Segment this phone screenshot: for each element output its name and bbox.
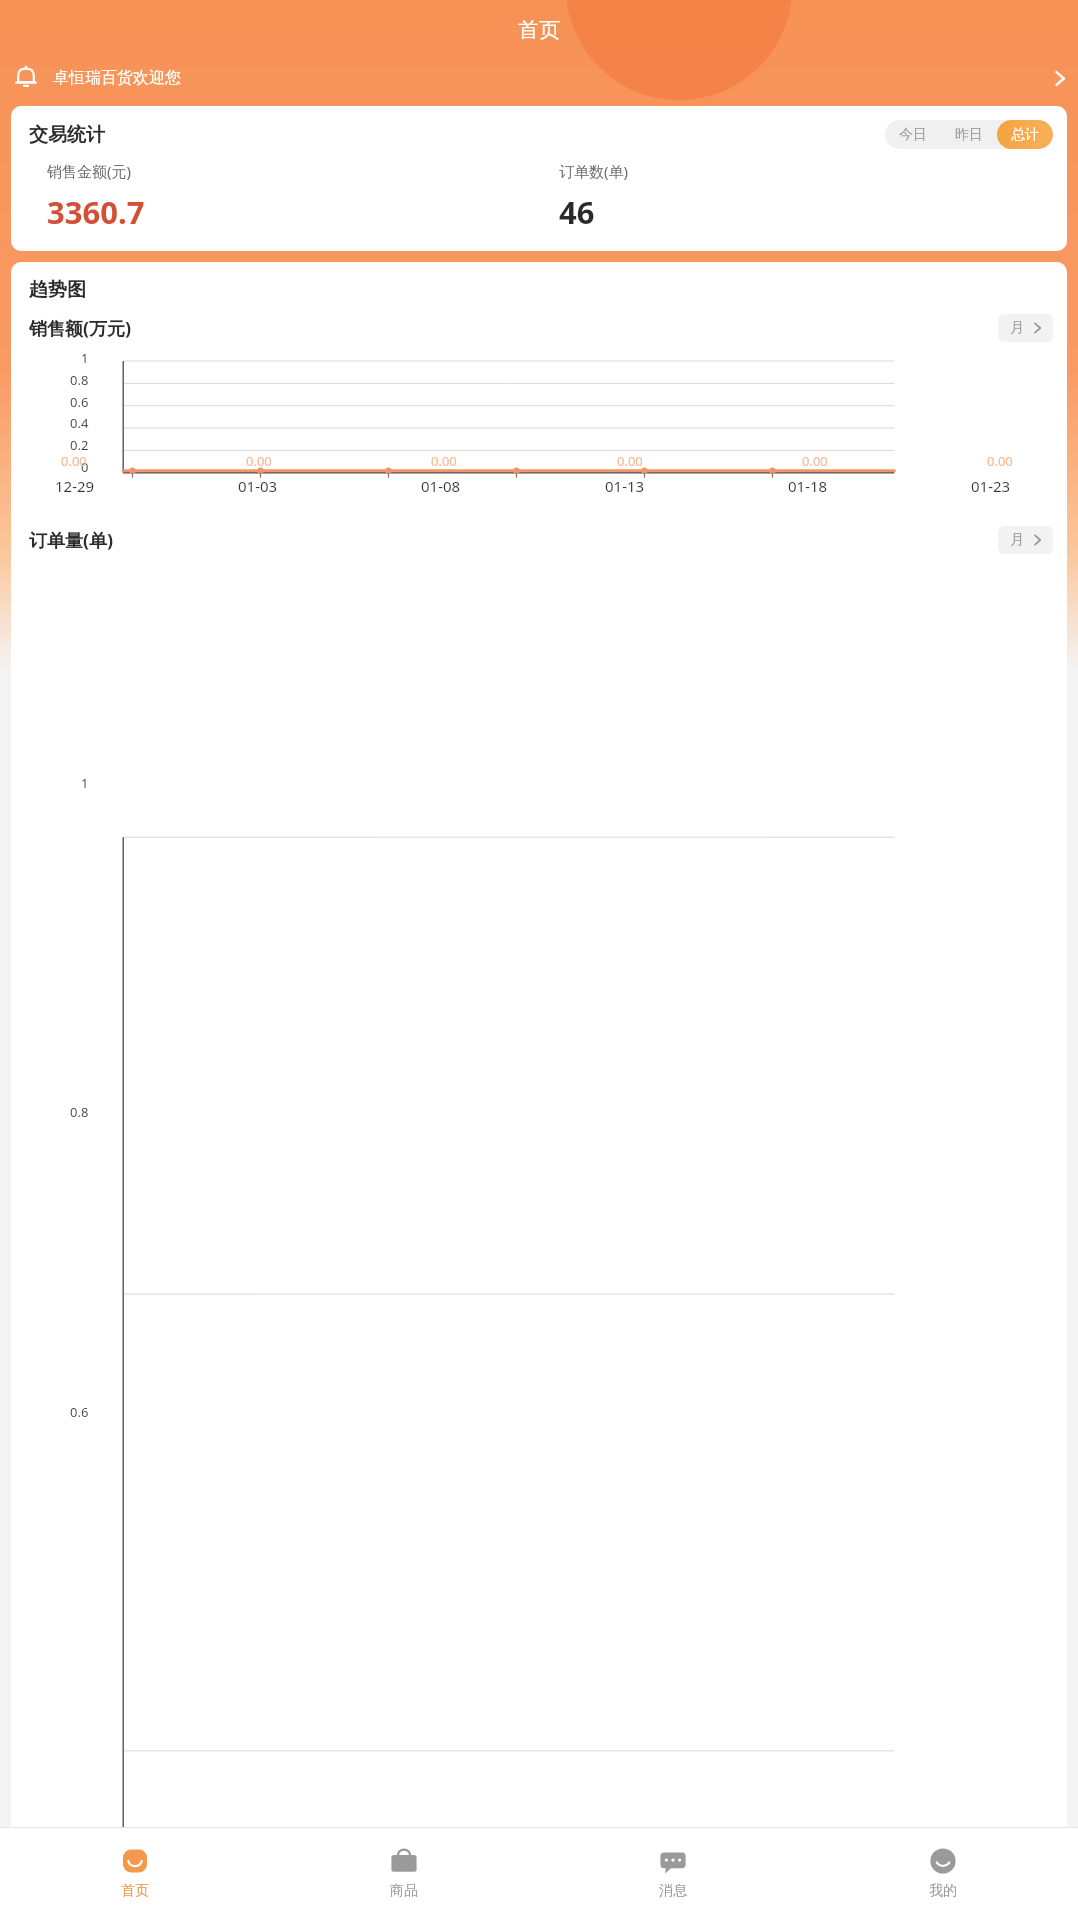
button[interactable]: Home bbox=[0, 1828, 269, 1918]
other: Home bbox=[120, 1846, 150, 1876]
staticText: 0.00 bbox=[246, 452, 272, 470]
staticText: 0.00 bbox=[802, 452, 828, 470]
staticText: 昨日 bbox=[955, 126, 983, 144]
other: Profile bbox=[928, 1846, 958, 1876]
staticText: 交易统计 bbox=[29, 123, 105, 147]
other: Notifications bbox=[13, 65, 39, 91]
staticText: 总计 bbox=[1011, 126, 1039, 144]
staticText: 1 bbox=[81, 349, 89, 367]
staticText: 消息 bbox=[659, 1882, 687, 1900]
button[interactable]: 昨日 bbox=[941, 120, 997, 149]
staticText: 0.4 bbox=[70, 414, 89, 432]
staticText: 我的 bbox=[929, 1882, 957, 1900]
staticText: 首页 bbox=[121, 1882, 149, 1900]
other: More bbox=[1034, 534, 1041, 546]
staticText: 0 bbox=[81, 458, 89, 476]
staticText: 月 bbox=[1010, 531, 1024, 549]
staticText: 趋势图 bbox=[29, 278, 86, 302]
staticText: 今日 bbox=[899, 126, 927, 144]
other: More bbox=[1055, 70, 1065, 87]
staticText: 0.8 bbox=[70, 371, 89, 389]
staticText: 0.00 bbox=[987, 452, 1013, 470]
staticText: 01-23 bbox=[971, 476, 1011, 496]
staticText: 0.6 bbox=[70, 1403, 89, 1421]
button[interactable]: 月 bbox=[998, 526, 1053, 554]
button[interactable]: Notifications bbox=[0, 58, 1078, 98]
staticText: 46 bbox=[559, 191, 595, 233]
staticText: 01-03 bbox=[238, 476, 278, 496]
staticText: 1 bbox=[81, 774, 89, 792]
other: Products bbox=[389, 1846, 419, 1876]
staticText: 0.2 bbox=[70, 436, 89, 454]
staticText: 销售额(万元) bbox=[29, 316, 132, 341]
staticText: 商品 bbox=[390, 1882, 418, 1900]
staticText: 0.00 bbox=[431, 452, 457, 470]
staticText: 01-08 bbox=[421, 476, 461, 496]
button[interactable]: Products bbox=[269, 1828, 538, 1918]
staticText: 订单数(单) bbox=[559, 161, 629, 181]
staticText: 首页 bbox=[518, 17, 560, 43]
staticText: 01-18 bbox=[788, 476, 828, 496]
other: More bbox=[1034, 322, 1041, 334]
staticText: 0.6 bbox=[70, 393, 89, 411]
button[interactable]: Messages bbox=[538, 1828, 808, 1918]
staticText: 销售金额(元) bbox=[47, 161, 132, 181]
staticText: 0.00 bbox=[61, 452, 87, 470]
staticText: 0.8 bbox=[70, 1103, 89, 1121]
button[interactable]: 月 bbox=[998, 314, 1053, 342]
staticText: 01-13 bbox=[605, 476, 645, 496]
staticText: 卓恒瑞百货欢迎您 bbox=[53, 68, 181, 88]
staticText: 订单量(单) bbox=[29, 528, 114, 553]
staticText: 月 bbox=[1010, 319, 1024, 337]
staticText: 12-29 bbox=[55, 476, 95, 496]
staticText: 0.00 bbox=[617, 452, 643, 470]
button[interactable]: 总计 bbox=[997, 120, 1053, 149]
other: Messages bbox=[658, 1846, 688, 1876]
button[interactable]: 今日 bbox=[885, 120, 941, 149]
staticText: 3360.7 bbox=[47, 191, 145, 233]
button[interactable]: Profile bbox=[808, 1828, 1078, 1918]
